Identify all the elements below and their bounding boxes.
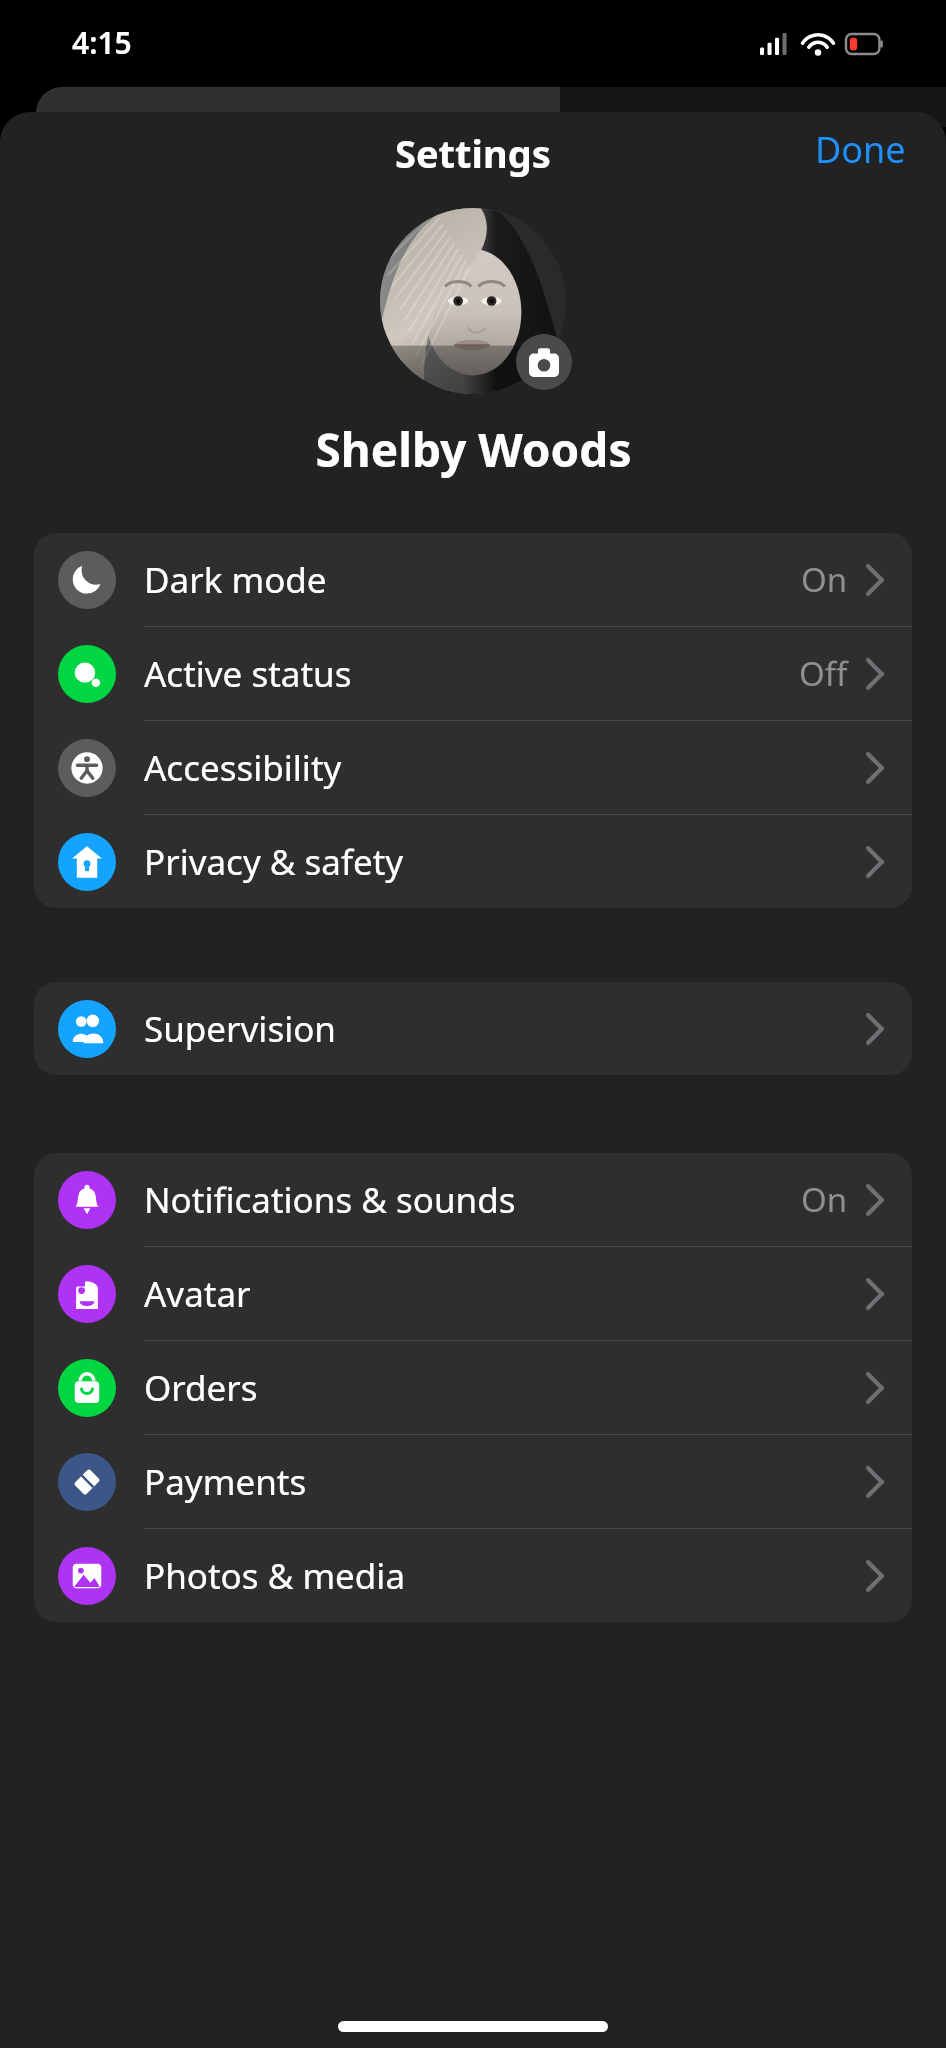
button[interactable]: Avatar (34, 1247, 912, 1340)
staticText: Active status (144, 650, 799, 698)
staticText: 4:15 (72, 22, 132, 63)
button[interactable]: Payments (34, 1435, 912, 1528)
button[interactable]: Dark mode (34, 533, 912, 626)
staticText: On (801, 557, 848, 602)
staticText: Shelby Woods (315, 418, 632, 481)
button[interactable]: Active status (34, 627, 912, 720)
staticText: Settings (395, 127, 551, 179)
staticText: Dark mode (144, 556, 801, 604)
staticText: Avatar (144, 1270, 866, 1318)
staticText: Accessibility (144, 744, 866, 792)
staticText: On (801, 1177, 848, 1222)
button[interactable]: Notifications & sounds (34, 1153, 912, 1246)
staticText: Photos & media (144, 1552, 866, 1600)
staticText: Supervision (144, 1005, 866, 1053)
staticText: Orders (144, 1364, 866, 1412)
staticText: Privacy & safety (144, 838, 866, 886)
button[interactable]: Privacy & safety (34, 815, 912, 908)
staticText: Done (815, 125, 906, 174)
staticText: Notifications & sounds (144, 1176, 801, 1224)
button[interactable]: Supervision (34, 982, 912, 1075)
button[interactable]: Change profile photo (380, 208, 566, 394)
button[interactable]: Orders (34, 1341, 912, 1434)
staticText: Payments (144, 1458, 866, 1506)
button[interactable]: Change photo (516, 334, 572, 390)
button[interactable]: Done (803, 117, 918, 182)
button[interactable]: Accessibility (34, 721, 912, 814)
staticText: Off (799, 651, 848, 696)
button[interactable]: Photos & media (34, 1529, 912, 1622)
